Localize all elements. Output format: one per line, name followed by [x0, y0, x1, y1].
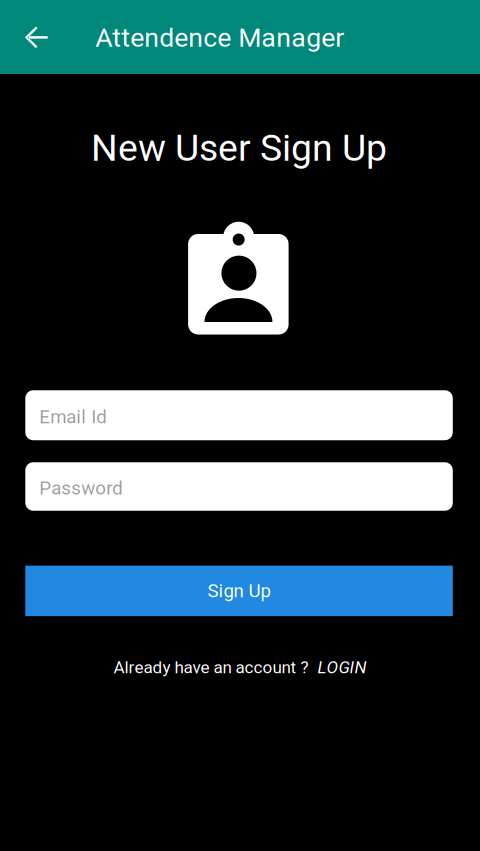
staticText: New User Sign Up	[91, 126, 387, 170]
staticText: Already have an account ?	[113, 657, 308, 677]
staticText: Email Id	[39, 406, 107, 428]
staticText: Password	[39, 477, 123, 499]
staticText: Attendence Manager	[95, 22, 344, 53]
button[interactable]: Sign Up	[25, 566, 453, 616]
staticText: Sign Up	[208, 580, 271, 602]
button[interactable]: Already have an account ?	[111, 657, 366, 677]
button[interactable]: Back	[8, 6, 64, 68]
button[interactable]: Email Id	[25, 390, 453, 440]
button[interactable]: Password	[25, 462, 453, 511]
staticText: LOGIN	[318, 657, 367, 677]
